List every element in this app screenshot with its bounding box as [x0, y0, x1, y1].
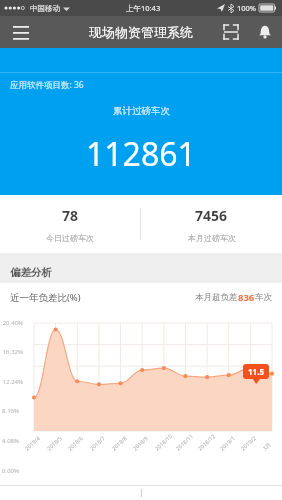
staticText: 2018/4: [23, 435, 41, 452]
staticText: 2018/7: [88, 435, 106, 452]
staticText: 2018/9: [131, 435, 149, 452]
staticText: 2018/10: [153, 432, 173, 452]
staticText: 2018/12: [196, 432, 216, 452]
button[interactable]: Scan: [214, 16, 248, 48]
staticText: 今日过磅车次: [46, 233, 94, 243]
button[interactable]: 78: [0, 195, 140, 253]
staticText: 本月过磅车次: [188, 233, 236, 243]
staticText: 7456: [195, 206, 228, 225]
staticText: 100%: [237, 3, 257, 13]
staticText: 112861: [86, 132, 196, 176]
staticText: 2018/6: [66, 435, 84, 452]
staticText: 车次: [255, 292, 272, 303]
staticText: 12.24%: [2, 378, 23, 386]
staticText: 836: [238, 291, 255, 304]
staticText: 11.5: [248, 366, 264, 377]
staticText: 中国移动: [30, 4, 60, 13]
button[interactable]: Notifications: [248, 16, 282, 48]
staticText: 78: [62, 206, 79, 225]
staticText: 累计过磅车次: [113, 105, 170, 117]
staticText: 8.16%: [2, 407, 19, 415]
staticText: 20.40%: [2, 319, 23, 327]
staticText: 2018/8: [110, 435, 128, 452]
staticText: 0.00%: [2, 467, 19, 475]
button[interactable]: 78: [0, 195, 282, 253]
staticText: 3月: [261, 441, 273, 453]
staticText: 16.32%: [2, 348, 23, 356]
staticText: 2018/11: [174, 432, 194, 452]
button[interactable]: Menu: [0, 16, 42, 48]
staticText: 本月超负差: [195, 292, 238, 303]
button[interactable]: 偏差分析: [0, 261, 282, 283]
staticText: 应用软件项目数: 36: [10, 79, 84, 91]
staticText: 2018/5: [45, 435, 63, 452]
staticText: 近一年负差比(%): [10, 291, 81, 304]
staticText: 4.08%: [2, 437, 19, 445]
staticText: 现场物资管理系统: [89, 24, 193, 40]
staticText: 2019/1: [218, 435, 236, 452]
staticText: 2019/2: [239, 435, 257, 452]
staticText: 偏差分析: [10, 266, 52, 279]
staticText: 上午10:43: [126, 3, 161, 13]
button[interactable]: 7456: [141, 195, 282, 253]
